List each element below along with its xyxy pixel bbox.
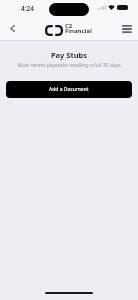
- button[interactable]: Menu: [117, 18, 137, 40]
- button[interactable]: Back: [2, 17, 22, 39]
- button[interactable]: Add a Document: [6, 81, 132, 98]
- staticText: Financial: [65, 27, 92, 35]
- staticText: Most recent paystubs totalling a full 30…: [0, 62, 138, 69]
- staticText: Pay Stubs: [0, 50, 138, 60]
- staticText: Add a Document: [49, 86, 89, 93]
- staticText: 4:24: [21, 4, 34, 13]
- staticText: C2: [65, 22, 73, 30]
